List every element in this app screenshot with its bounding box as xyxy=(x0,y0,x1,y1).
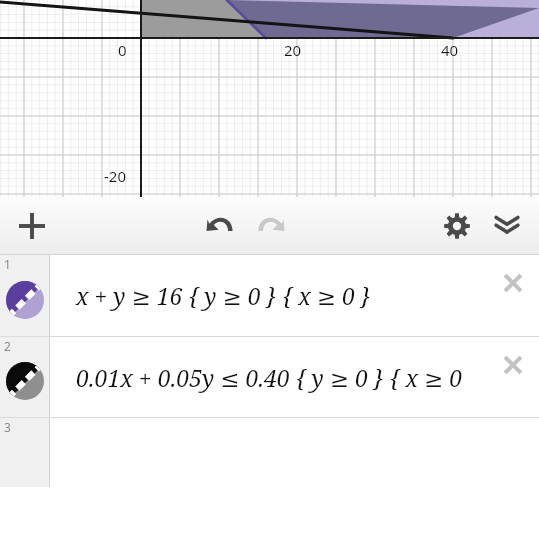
staticText: 0 xyxy=(118,40,127,60)
button[interactable]: Undo xyxy=(196,202,244,250)
button[interactable]: Delete expression xyxy=(495,265,531,301)
button[interactable]: 3 xyxy=(0,418,539,487)
button[interactable]: Add expression xyxy=(8,202,56,250)
staticText: 20 xyxy=(284,40,302,60)
button[interactable]: 2 xyxy=(0,337,539,417)
staticText: 1 xyxy=(4,256,11,272)
button[interactable]: 1 xyxy=(0,255,539,336)
button[interactable]: Delete expression xyxy=(495,347,531,383)
staticText: 0.01x + 0.05y ≤ 0.40 { y ≥ 0 } { x ≥ 0 xyxy=(76,362,463,393)
staticText: x + y ≥ 16 { y ≥ 0 } { x ≥ 0 } xyxy=(76,280,371,311)
staticText: 3 xyxy=(4,419,11,435)
button[interactable]: Settings xyxy=(433,202,481,250)
button[interactable]: Redo xyxy=(247,202,295,250)
staticText: 2 xyxy=(4,338,11,354)
staticText: 40 xyxy=(441,40,459,60)
button[interactable]: 0 xyxy=(0,0,539,197)
button[interactable]: Collapse xyxy=(483,202,531,250)
staticText: -20 xyxy=(104,166,126,186)
